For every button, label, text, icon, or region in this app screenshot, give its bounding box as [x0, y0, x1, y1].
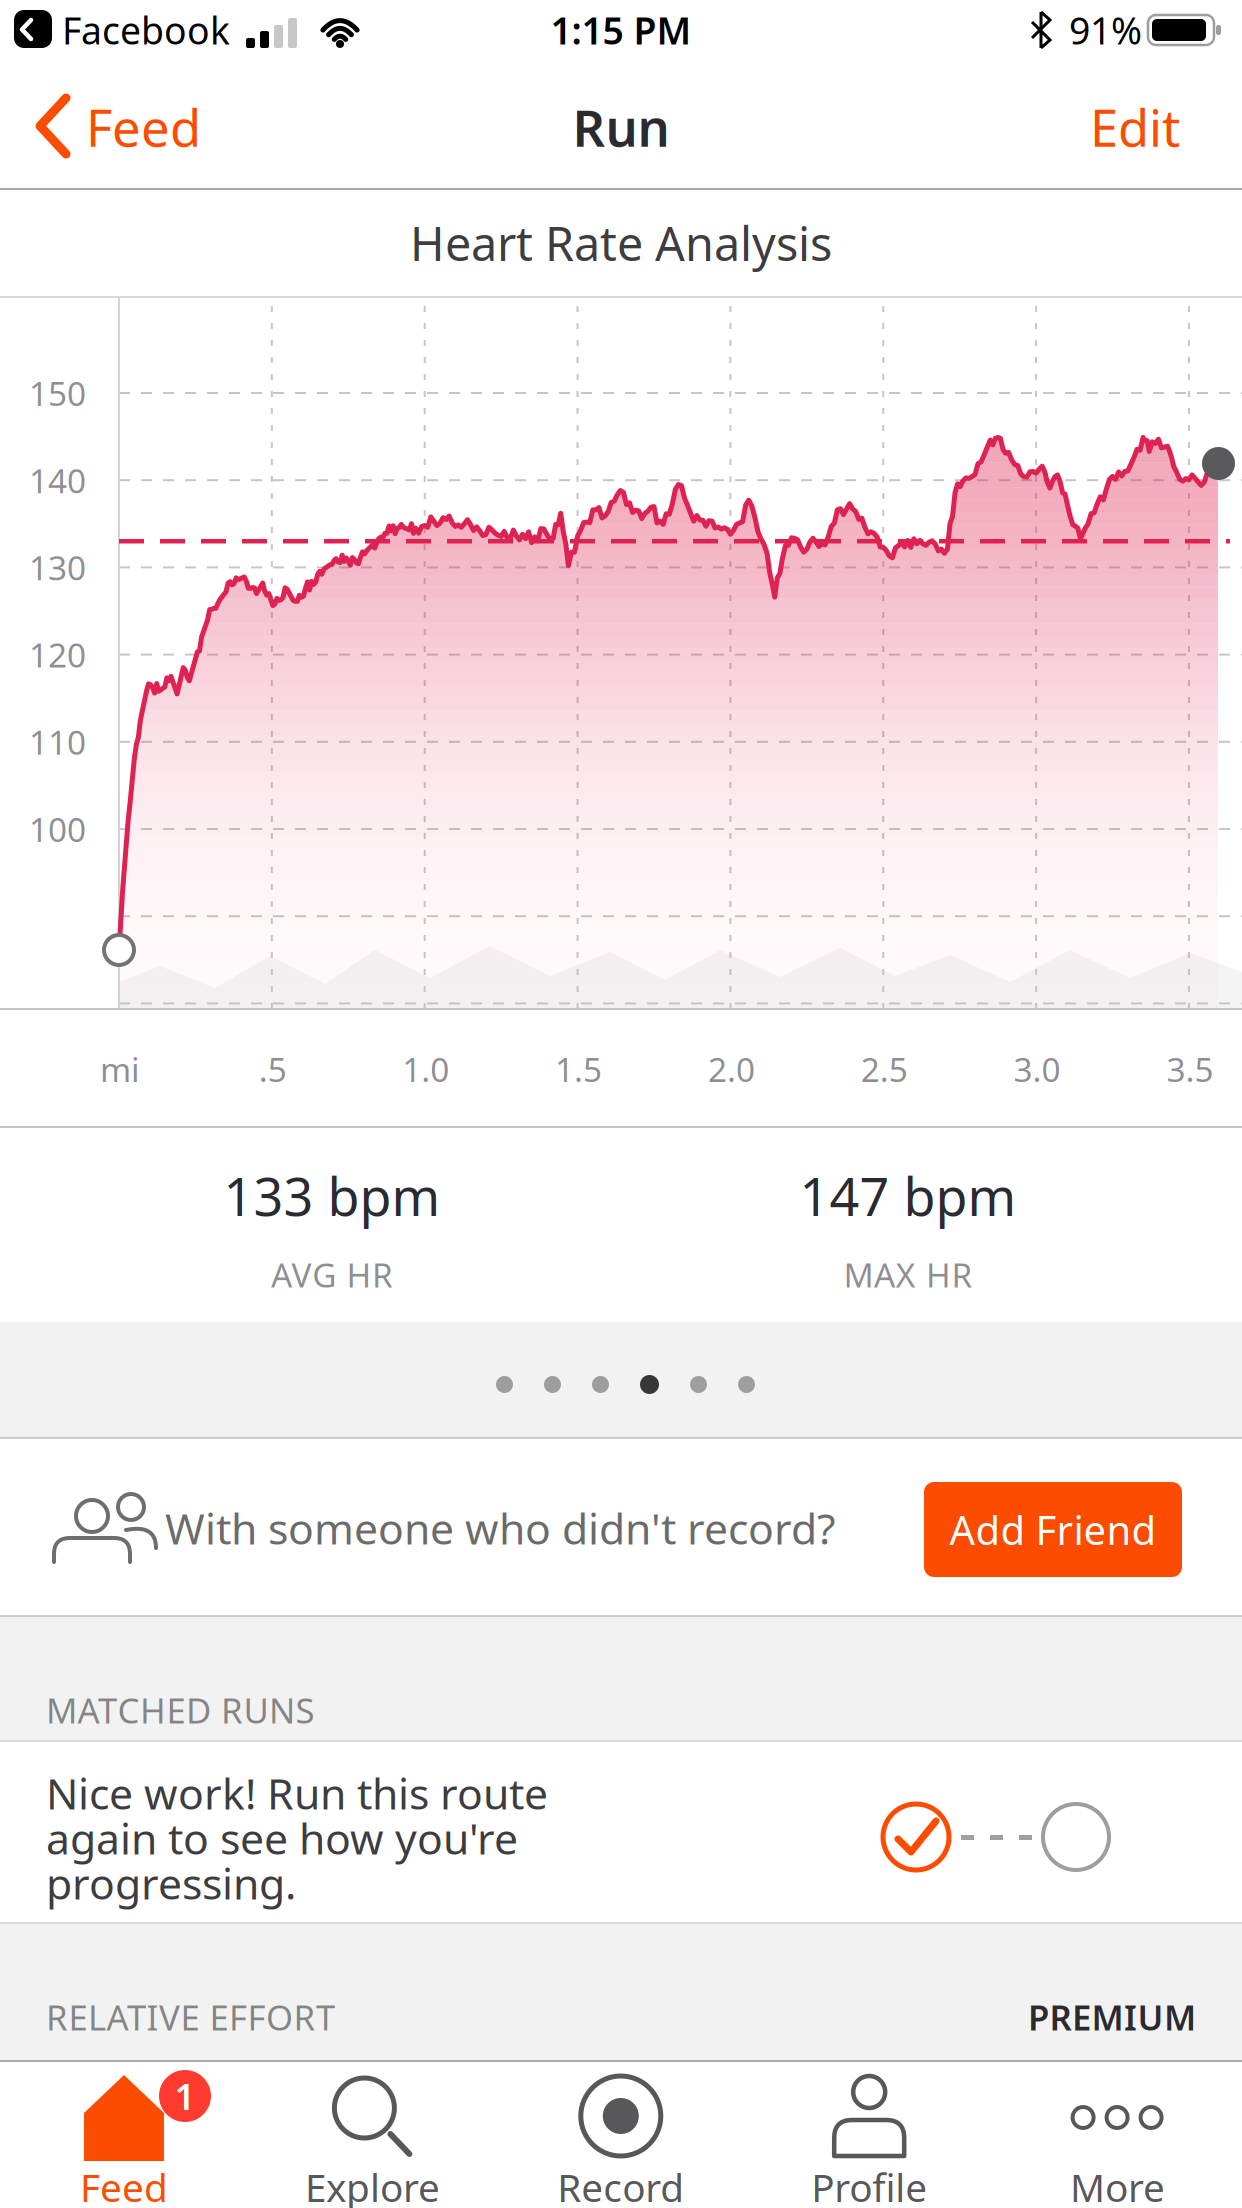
staticText: 2.0 — [708, 1047, 755, 1091]
staticText: 91% — [1069, 5, 1142, 55]
staticText: Nice work! Run this route — [46, 1765, 548, 1821]
button[interactable]: Edit — [1000, 97, 1180, 157]
staticText: 150 — [29, 371, 86, 415]
staticText: RELATIVE EFFORT — [46, 1994, 335, 2040]
staticText: AVG HR — [271, 1252, 393, 1297]
staticText: 3.0 — [1014, 1047, 1061, 1091]
staticText: 110 — [29, 720, 86, 764]
button[interactable]: Add Friend — [924, 1482, 1182, 1577]
button[interactable]: Profile — [745, 2062, 993, 2208]
staticText: Facebook — [62, 5, 230, 55]
staticText: MAX HR — [843, 1252, 972, 1297]
staticText: PREMIUM — [1028, 1994, 1196, 2040]
staticText: 100 — [29, 807, 86, 851]
button[interactable]: 1 — [0, 2062, 248, 2208]
staticText: Edit — [1090, 93, 1180, 161]
staticText: progressing. — [46, 1855, 296, 1911]
staticText: Record — [557, 2161, 684, 2208]
staticText: 1.0 — [402, 1047, 449, 1091]
staticText: Explore — [305, 2161, 440, 2208]
staticText: With someone who didn't record? — [165, 1500, 836, 1556]
button[interactable]: Feed — [40, 96, 300, 158]
button[interactable]: Nice work! Run this route — [0, 1742, 1242, 1922]
staticText: 140 — [29, 458, 86, 502]
staticText: 1 — [174, 2072, 195, 2120]
staticText: 120 — [29, 632, 86, 677]
staticText: Feed — [86, 93, 201, 161]
button[interactable]: Record — [497, 2062, 745, 2208]
staticText: MATCHED RUNS — [46, 1687, 314, 1733]
staticText: 133 bpm — [223, 1161, 440, 1230]
staticText: Profile — [811, 2161, 927, 2208]
staticText: .5 — [259, 1047, 287, 1091]
staticText: 1.5 — [555, 1047, 602, 1091]
staticText: Add Friend — [949, 1503, 1156, 1556]
staticText: again to see how you're — [46, 1810, 518, 1866]
staticText: 3.5 — [1166, 1047, 1213, 1091]
button[interactable]: More — [994, 2062, 1242, 2208]
staticText: mi — [100, 1047, 140, 1091]
staticText: Feed — [80, 2161, 168, 2208]
staticText: 2.5 — [861, 1047, 908, 1091]
staticText: Heart Rate Analysis — [410, 212, 832, 274]
staticText: 1:15 PM — [550, 5, 691, 55]
staticText: 130 — [29, 545, 86, 590]
staticText: 147 bpm — [799, 1161, 1016, 1230]
button[interactable]: Explore — [248, 2062, 496, 2208]
staticText: More — [1070, 2161, 1165, 2208]
staticText: Run — [572, 93, 669, 161]
